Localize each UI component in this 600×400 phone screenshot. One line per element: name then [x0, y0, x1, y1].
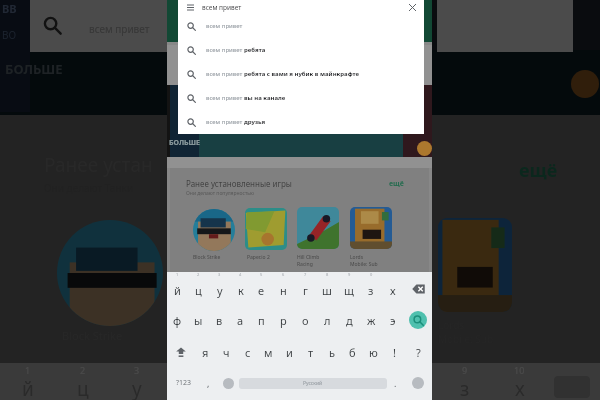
- button[interactable]: о: [294, 304, 316, 336]
- button[interactable]: а: [230, 304, 251, 336]
- staticText: ь: [329, 345, 335, 360]
- button[interactable]: 8: [316, 272, 338, 304]
- staticText: с: [245, 345, 251, 360]
- staticText: п: [258, 313, 265, 328]
- button[interactable]: ?: [405, 336, 432, 368]
- button[interactable]: я: [195, 336, 216, 368]
- button[interactable]: Search: [404, 304, 432, 336]
- staticText: Русский: [303, 380, 323, 387]
- staticText: д: [346, 313, 353, 328]
- staticText: всем привет: [206, 22, 243, 30]
- staticText: ч: [223, 345, 230, 360]
- staticText: 3: [218, 272, 221, 277]
- button[interactable]: 5: [251, 272, 272, 304]
- button[interactable]: ч: [216, 336, 237, 368]
- button[interactable]: и: [279, 336, 300, 368]
- staticText: ш: [322, 283, 332, 298]
- staticText: к: [238, 283, 244, 298]
- button[interactable]: д: [338, 304, 360, 336]
- button[interactable]: ы: [188, 304, 209, 336]
- button[interactable]: Menu: [178, 0, 424, 14]
- button[interactable]: 1: [167, 272, 188, 304]
- staticText: 10: [514, 364, 525, 376]
- staticText: ?123: [176, 378, 192, 388]
- button[interactable]: [245, 208, 287, 250]
- button[interactable]: 2: [188, 272, 209, 304]
- staticText: 4: [239, 272, 242, 277]
- button[interactable]: р: [272, 304, 294, 336]
- button[interactable]: ж: [360, 304, 382, 336]
- staticText: Они делают популярностью: [186, 190, 255, 197]
- button[interactable]: всем привет: [178, 86, 424, 110]
- button[interactable]: Русский: [239, 378, 387, 389]
- button[interactable]: 7: [294, 272, 316, 304]
- staticText: т: [308, 345, 314, 360]
- staticText: всем привет: [206, 118, 244, 126]
- button[interactable]: всем привет: [178, 110, 424, 134]
- button[interactable]: э: [382, 304, 404, 336]
- staticText: БОЛЬШЕ: [5, 60, 63, 78]
- staticText: всем привет: [89, 22, 150, 36]
- button[interactable]: 4: [230, 272, 251, 304]
- button[interactable]: п: [251, 304, 272, 336]
- button[interactable]: м: [258, 336, 279, 368]
- button[interactable]: [350, 207, 392, 249]
- staticText: 2: [80, 364, 86, 376]
- staticText: о: [302, 313, 309, 328]
- staticText: х: [515, 376, 525, 400]
- staticText: ВО: [2, 28, 17, 42]
- button[interactable]: б: [342, 336, 363, 368]
- button[interactable]: ?123: [167, 368, 200, 398]
- staticText: з: [460, 376, 470, 400]
- button[interactable]: л: [316, 304, 338, 336]
- staticText: щ: [344, 283, 354, 298]
- staticText: ц: [195, 283, 202, 298]
- staticText: ВВ: [2, 1, 17, 16]
- staticText: всем привет: [206, 94, 244, 102]
- button[interactable]: 0: [360, 272, 382, 304]
- button[interactable]: Emoji: [217, 368, 239, 398]
- staticText: всем привет: [206, 46, 244, 54]
- button[interactable]: х: [382, 272, 404, 304]
- staticText: м: [264, 345, 273, 360]
- button[interactable]: т: [300, 336, 321, 368]
- staticText: й: [22, 376, 34, 400]
- button[interactable]: ь: [321, 336, 342, 368]
- staticText: в: [216, 313, 223, 328]
- button[interactable]: [297, 207, 339, 249]
- staticText: ц: [77, 376, 89, 400]
- staticText: р: [280, 313, 287, 328]
- staticText: ещё: [519, 158, 558, 183]
- button[interactable]: [193, 209, 235, 251]
- button[interactable]: всем привет: [178, 14, 424, 38]
- button[interactable]: Voice input: [404, 368, 432, 398]
- staticText: у: [132, 376, 142, 400]
- button[interactable]: всем привет: [178, 38, 424, 62]
- staticText: Block Strike: [193, 254, 221, 261]
- staticText: 3: [134, 364, 140, 376]
- staticText: 9: [348, 272, 351, 277]
- button[interactable]: Shift: [167, 336, 195, 368]
- button[interactable]: .: [387, 368, 404, 398]
- staticText: Ранее установленные игры: [186, 178, 292, 189]
- staticText: х: [390, 283, 396, 298]
- staticText: ж: [367, 313, 376, 328]
- staticText: 9: [462, 364, 468, 376]
- button[interactable]: 9: [338, 272, 360, 304]
- button[interactable]: 6: [272, 272, 294, 304]
- button[interactable]: ф: [167, 304, 188, 336]
- staticText: ребята с вами я нубик в майнкрафте: [244, 70, 359, 78]
- button[interactable]: ю: [363, 336, 384, 368]
- other: Menu: [187, 4, 194, 11]
- button[interactable]: с: [237, 336, 258, 368]
- button[interactable]: ,: [200, 368, 217, 398]
- button[interactable]: 3: [209, 272, 230, 304]
- button[interactable]: всем привет: [178, 62, 424, 86]
- button[interactable]: в: [209, 304, 230, 336]
- button[interactable]: Backspace: [404, 272, 432, 304]
- button[interactable]: !: [384, 336, 405, 368]
- staticText: ы: [194, 313, 203, 328]
- staticText: всем привет: [202, 3, 242, 12]
